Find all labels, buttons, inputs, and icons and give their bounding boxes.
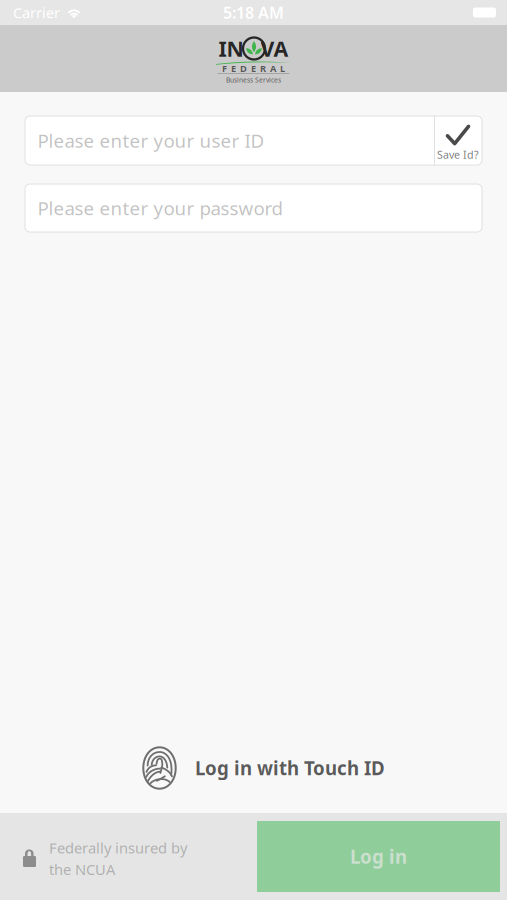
button[interactable]: Save Id? <box>434 116 482 165</box>
staticText: F E D E R A L <box>222 62 285 75</box>
button[interactable]: Log in <box>257 821 500 892</box>
button[interactable]: Log in with Touch ID <box>132 740 375 796</box>
staticText: Save Id? <box>437 147 479 162</box>
button[interactable]: Please enter your user ID <box>25 116 434 165</box>
staticText: 5:18 AM <box>223 2 284 23</box>
staticText: Federally insured by <box>49 838 187 857</box>
staticText: VA <box>260 34 288 63</box>
staticText: the NCUA <box>49 859 115 879</box>
staticText: Log in <box>350 844 407 869</box>
staticText: Business Services <box>226 76 281 84</box>
staticText: IN <box>218 34 243 63</box>
staticText: Carrier <box>13 3 60 22</box>
button[interactable]: Please enter your password <box>25 184 482 232</box>
staticText: Please enter your password <box>37 196 282 220</box>
staticText: Please enter your user ID <box>37 128 264 153</box>
staticText: Log in with Touch ID <box>195 756 385 780</box>
